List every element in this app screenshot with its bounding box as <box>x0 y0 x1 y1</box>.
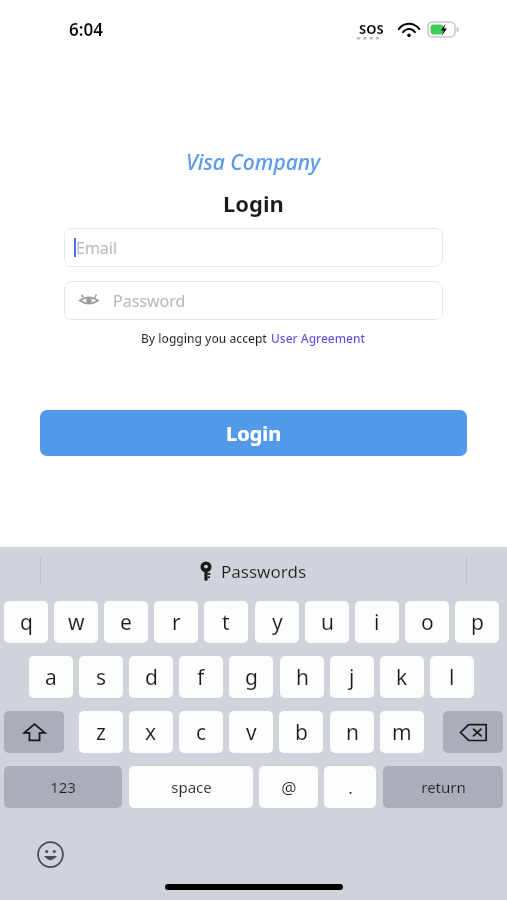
button[interactable]: Emoji <box>36 840 65 869</box>
staticText: By logging you accept <box>141 330 271 346</box>
staticText: d <box>145 663 158 692</box>
staticText: r <box>172 608 181 637</box>
button[interactable]: k <box>380 656 424 698</box>
staticText: c <box>196 718 207 747</box>
button[interactable]: d <box>129 656 173 698</box>
staticText: 123 <box>50 777 76 797</box>
staticText: x <box>145 718 157 747</box>
staticText: SOS <box>359 20 384 38</box>
button[interactable]: Show password <box>64 281 443 320</box>
staticText: l <box>449 663 455 692</box>
staticText: Login <box>226 420 282 447</box>
staticText: 6:04 <box>69 18 103 41</box>
staticText: o <box>421 608 434 637</box>
button[interactable]: Email <box>64 228 443 267</box>
button[interactable]: space <box>129 766 253 808</box>
staticText: m <box>392 718 412 747</box>
button[interactable]: 123 <box>4 766 122 808</box>
button[interactable]: z <box>79 711 123 753</box>
staticText: t <box>222 608 230 637</box>
button[interactable]: @ <box>259 766 318 808</box>
staticText: a <box>45 663 57 692</box>
button[interactable]: j <box>330 656 374 698</box>
staticText: space <box>171 777 212 797</box>
staticText: v <box>246 718 257 747</box>
button[interactable]: h <box>280 656 324 698</box>
staticText: q <box>20 608 33 637</box>
button[interactable]: l <box>430 656 474 698</box>
button[interactable]: Login <box>40 410 467 456</box>
button[interactable]: a <box>29 656 73 698</box>
staticText: w <box>68 608 85 637</box>
button[interactable]: n <box>330 711 374 753</box>
button[interactable]: Shift <box>4 711 64 753</box>
staticText: s <box>96 663 107 692</box>
button[interactable]: b <box>279 711 323 753</box>
button[interactable]: o <box>405 601 449 643</box>
button[interactable]: m <box>380 711 424 753</box>
button[interactable]: v <box>229 711 273 753</box>
staticText: . <box>348 776 353 799</box>
staticText: y <box>272 608 283 637</box>
button[interactable]: . <box>324 766 376 808</box>
staticText: return <box>421 777 466 797</box>
staticText: u <box>321 608 334 637</box>
staticText: Password <box>113 290 186 312</box>
button[interactable]: t <box>204 601 248 643</box>
button[interactable]: s <box>79 656 123 698</box>
staticText: h <box>296 663 309 692</box>
button[interactable]: User Agreement <box>271 330 366 346</box>
button[interactable]: Passwords <box>0 547 507 595</box>
button[interactable]: return <box>383 766 503 808</box>
button[interactable]: Backspace <box>443 711 503 753</box>
staticText: n <box>346 718 359 747</box>
staticText: b <box>295 718 308 747</box>
staticText: Login <box>223 188 284 218</box>
button[interactable]: w <box>54 601 98 643</box>
staticText: Email <box>76 237 118 259</box>
staticText: e <box>120 608 132 637</box>
staticText: k <box>396 663 408 692</box>
staticText: Passwords <box>221 560 307 583</box>
staticText: j <box>349 663 355 692</box>
other: Show password <box>79 294 99 307</box>
button[interactable]: r <box>154 601 198 643</box>
button[interactable]: c <box>179 711 223 753</box>
staticText: f <box>197 663 205 692</box>
staticText: @ <box>281 776 297 799</box>
button[interactable]: y <box>255 601 299 643</box>
button[interactable]: e <box>104 601 148 643</box>
button[interactable]: u <box>305 601 349 643</box>
staticText: p <box>471 608 484 637</box>
button[interactable]: x <box>129 711 173 753</box>
button[interactable]: i <box>355 601 399 643</box>
staticText: i <box>374 608 380 637</box>
button[interactable]: g <box>229 656 273 698</box>
button[interactable]: f <box>179 656 223 698</box>
staticText: g <box>245 663 258 692</box>
button[interactable]: q <box>4 601 48 643</box>
staticText: z <box>96 718 106 747</box>
staticText: User Agreement <box>271 330 366 346</box>
button[interactable]: p <box>455 601 499 643</box>
staticText: Visa Company <box>186 148 321 177</box>
